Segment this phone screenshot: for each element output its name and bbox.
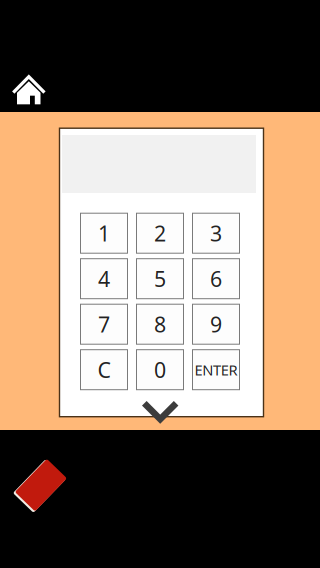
button[interactable]: 9 [192, 304, 239, 344]
button[interactable]: 7 [80, 304, 127, 344]
button[interactable]: 2 [136, 213, 183, 253]
staticText: ENTER [194, 360, 238, 379]
staticText: 9 [210, 310, 222, 338]
button[interactable]: 8 [136, 304, 183, 344]
staticText: 2 [154, 219, 166, 247]
button[interactable]: ENTER [192, 350, 239, 390]
staticText: 5 [154, 264, 166, 293]
button[interactable]: 0 [136, 350, 183, 390]
button[interactable]: 6 [192, 259, 239, 299]
staticText: 0 [154, 355, 166, 384]
button[interactable]: 5 [136, 259, 183, 299]
button[interactable]: Home [11, 72, 47, 106]
staticText: 4 [98, 264, 110, 293]
staticText: 7 [98, 310, 110, 338]
button[interactable]: C [80, 350, 127, 390]
staticText: 1 [98, 219, 110, 247]
staticText: 3 [210, 219, 222, 247]
staticText: 6 [210, 264, 222, 293]
button[interactable]: 4 [80, 259, 127, 299]
button[interactable]: 1 [80, 213, 127, 253]
staticText: 8 [154, 310, 166, 338]
staticText: C [97, 355, 110, 384]
button[interactable]: 3 [192, 213, 239, 253]
